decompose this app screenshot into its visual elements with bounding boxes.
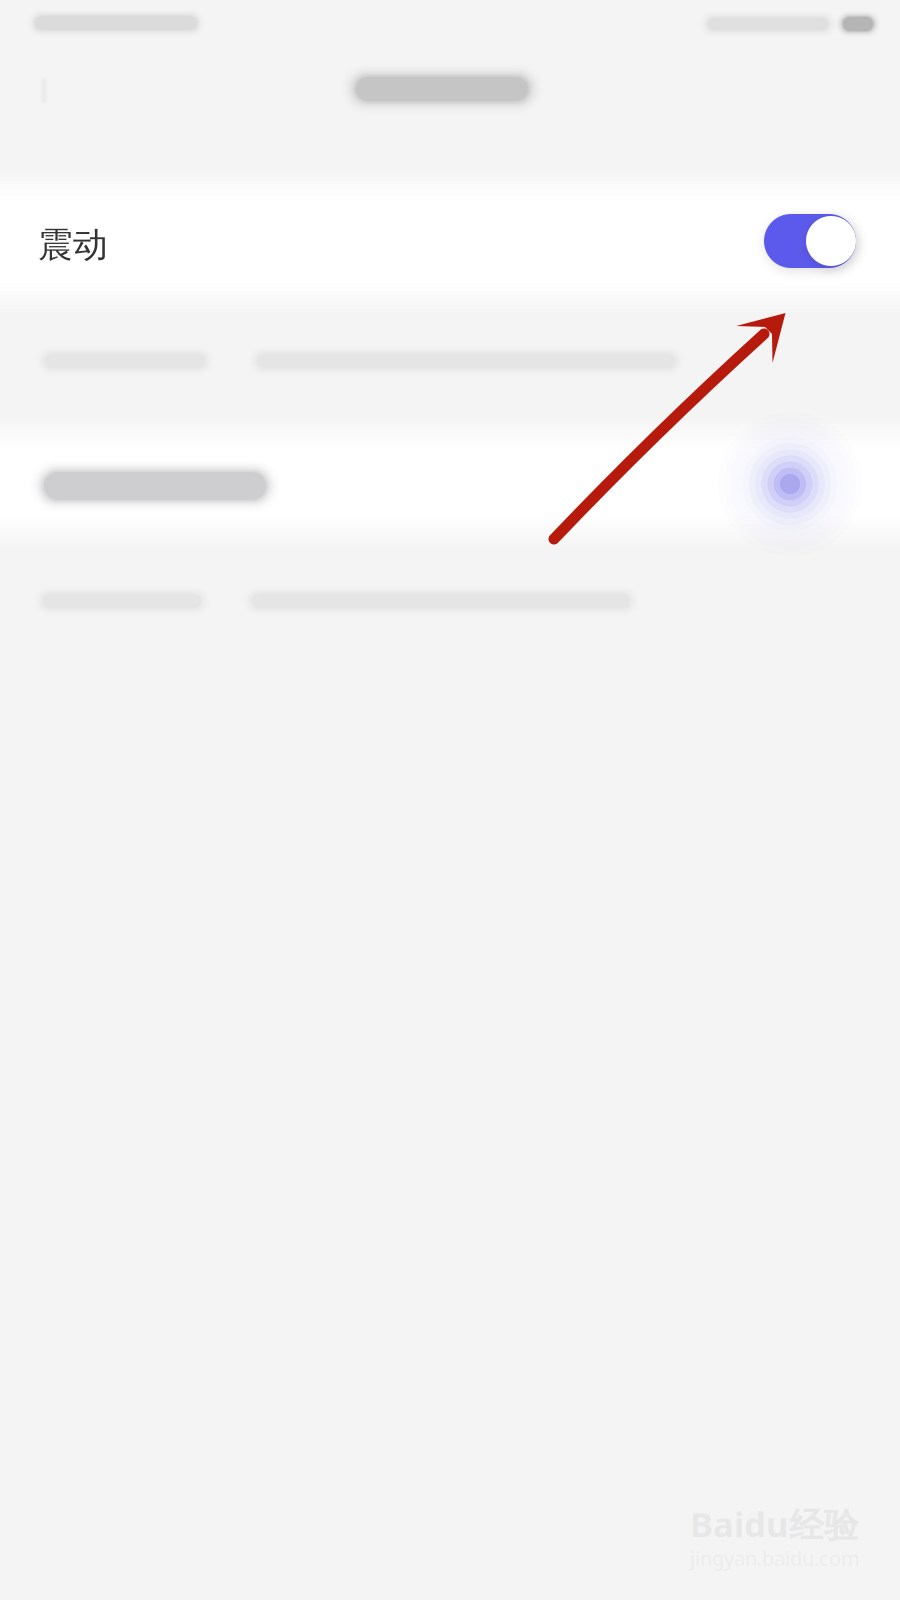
button[interactable]: 震动 bbox=[0, 170, 900, 312]
button[interactable]: Settings row bbox=[0, 416, 900, 548]
staticText: Baidu经验 bbox=[690, 1501, 859, 1547]
staticText: 震动 bbox=[38, 224, 108, 266]
